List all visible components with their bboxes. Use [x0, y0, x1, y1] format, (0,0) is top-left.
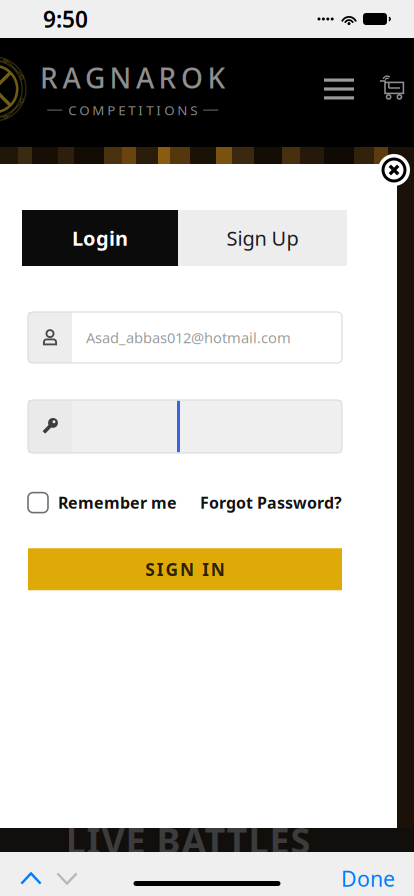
- button[interactable]: Next field: [45, 864, 89, 893]
- button[interactable]: Done: [341, 864, 395, 893]
- staticText: LIVE BATTLES: [65, 816, 310, 864]
- staticText: COMPETITIONS: [68, 101, 197, 119]
- button[interactable]: Sign Up: [178, 210, 347, 266]
- button[interactable]: Forgot Password?: [200, 492, 342, 513]
- staticText: 9:50: [43, 4, 88, 34]
- staticText: Done: [341, 864, 395, 893]
- staticText: Forgot Password?: [200, 492, 342, 513]
- staticText: Remember me: [58, 492, 177, 513]
- button[interactable]: Menu: [324, 67, 354, 111]
- staticText: Login: [72, 225, 128, 251]
- staticText: Sign Up: [226, 225, 298, 251]
- button[interactable]: SIGN IN: [28, 548, 342, 590]
- button[interactable]: Shopping cart: [378, 67, 407, 111]
- staticText: SIGN IN: [145, 558, 225, 581]
- staticText: RAGNAROK: [40, 59, 225, 96]
- button[interactable]: Remember me: [28, 492, 177, 513]
- button[interactable]: Login: [22, 210, 178, 266]
- staticText: Asad_abbas012@hotmail.com: [86, 328, 291, 347]
- button[interactable]: Previous field: [9, 864, 53, 893]
- button[interactable]: Close: [0, 147, 410, 186]
